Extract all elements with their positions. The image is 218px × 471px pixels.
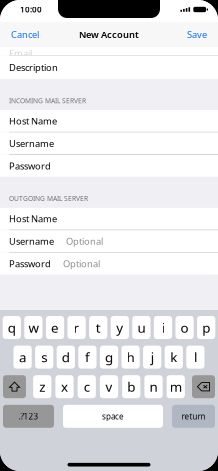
- button[interactable]: g: [100, 346, 118, 369]
- button[interactable]: t: [89, 316, 107, 339]
- staticText: Cancel: [11, 28, 39, 41]
- staticText: f: [85, 348, 90, 366]
- staticText: Password: [9, 160, 51, 172]
- button[interactable]: m: [167, 375, 185, 398]
- button[interactable]: e: [46, 316, 64, 339]
- button[interactable]: u: [132, 316, 150, 339]
- staticText: s: [41, 348, 47, 366]
- staticText: return: [181, 411, 205, 422]
- button[interactable]: q: [3, 316, 21, 339]
- staticText: n: [149, 378, 157, 395]
- staticText: o: [181, 319, 189, 336]
- staticText: Optional: [66, 235, 103, 247]
- button[interactable]: space: [63, 405, 163, 428]
- staticText: Description: [9, 61, 58, 74]
- staticText: h: [127, 348, 135, 366]
- button[interactable]: a: [13, 346, 32, 369]
- button[interactable]: s: [35, 346, 53, 369]
- staticText: INCOMING MAIL SERVER: [9, 96, 86, 105]
- button[interactable]: .?123: [3, 405, 54, 428]
- button[interactable]: Cancel: [0, 22, 45, 47]
- staticText: Username: [9, 235, 54, 247]
- staticText: y: [116, 319, 123, 336]
- staticText: k: [170, 348, 177, 366]
- staticText: q: [8, 319, 16, 336]
- button[interactable]: Save: [181, 22, 218, 47]
- button[interactable]: k: [165, 346, 183, 369]
- staticText: Host Name: [9, 212, 57, 225]
- staticText: m: [170, 378, 182, 395]
- staticText: e: [51, 319, 59, 336]
- staticText: Host Name: [9, 115, 57, 127]
- button[interactable]: r: [67, 316, 86, 339]
- staticText: d: [62, 348, 70, 366]
- button[interactable]: return: [172, 405, 215, 428]
- staticText: l: [194, 348, 197, 366]
- staticText: i: [161, 319, 164, 336]
- button[interactable]: i: [154, 316, 172, 339]
- button[interactable]: v: [100, 375, 118, 398]
- staticText: 10:00: [20, 4, 42, 15]
- button[interactable]: j: [143, 346, 161, 369]
- button[interactable]: b: [122, 375, 140, 398]
- staticText: x: [61, 378, 68, 395]
- staticText: .?123: [18, 411, 38, 422]
- button[interactable]: Delete: [192, 375, 215, 398]
- staticText: a: [19, 348, 26, 366]
- staticText: Optional: [63, 257, 100, 270]
- staticText: v: [105, 378, 112, 395]
- staticText: space: [102, 411, 124, 422]
- button[interactable]: c: [78, 375, 96, 398]
- staticText: u: [137, 319, 145, 336]
- button[interactable]: f: [78, 346, 96, 369]
- staticText: p: [202, 319, 210, 336]
- button[interactable]: w: [24, 316, 42, 339]
- staticText: b: [127, 378, 135, 395]
- staticText: z: [39, 378, 45, 395]
- staticText: g: [105, 348, 113, 366]
- staticText: w: [28, 319, 38, 336]
- button[interactable]: Shift: [3, 375, 26, 398]
- staticText: Password: [9, 257, 51, 270]
- button[interactable]: o: [175, 316, 194, 339]
- button[interactable]: p: [197, 316, 215, 339]
- button[interactable]: n: [144, 375, 163, 398]
- staticText: r: [74, 319, 80, 336]
- staticText: Username: [9, 137, 54, 150]
- button[interactable]: z: [33, 375, 51, 398]
- staticText: OUTGOING MAIL SERVER: [9, 194, 88, 203]
- button[interactable]: x: [55, 375, 74, 398]
- staticText: New Account: [79, 28, 139, 41]
- staticText: c: [84, 378, 90, 395]
- button[interactable]: l: [186, 346, 204, 369]
- button[interactable]: d: [57, 346, 75, 369]
- button[interactable]: y: [111, 316, 129, 339]
- button[interactable]: h: [121, 346, 140, 369]
- staticText: j: [151, 348, 154, 366]
- staticText: Email: [9, 47, 32, 59]
- staticText: t: [96, 319, 101, 336]
- staticText: Save: [187, 28, 207, 41]
